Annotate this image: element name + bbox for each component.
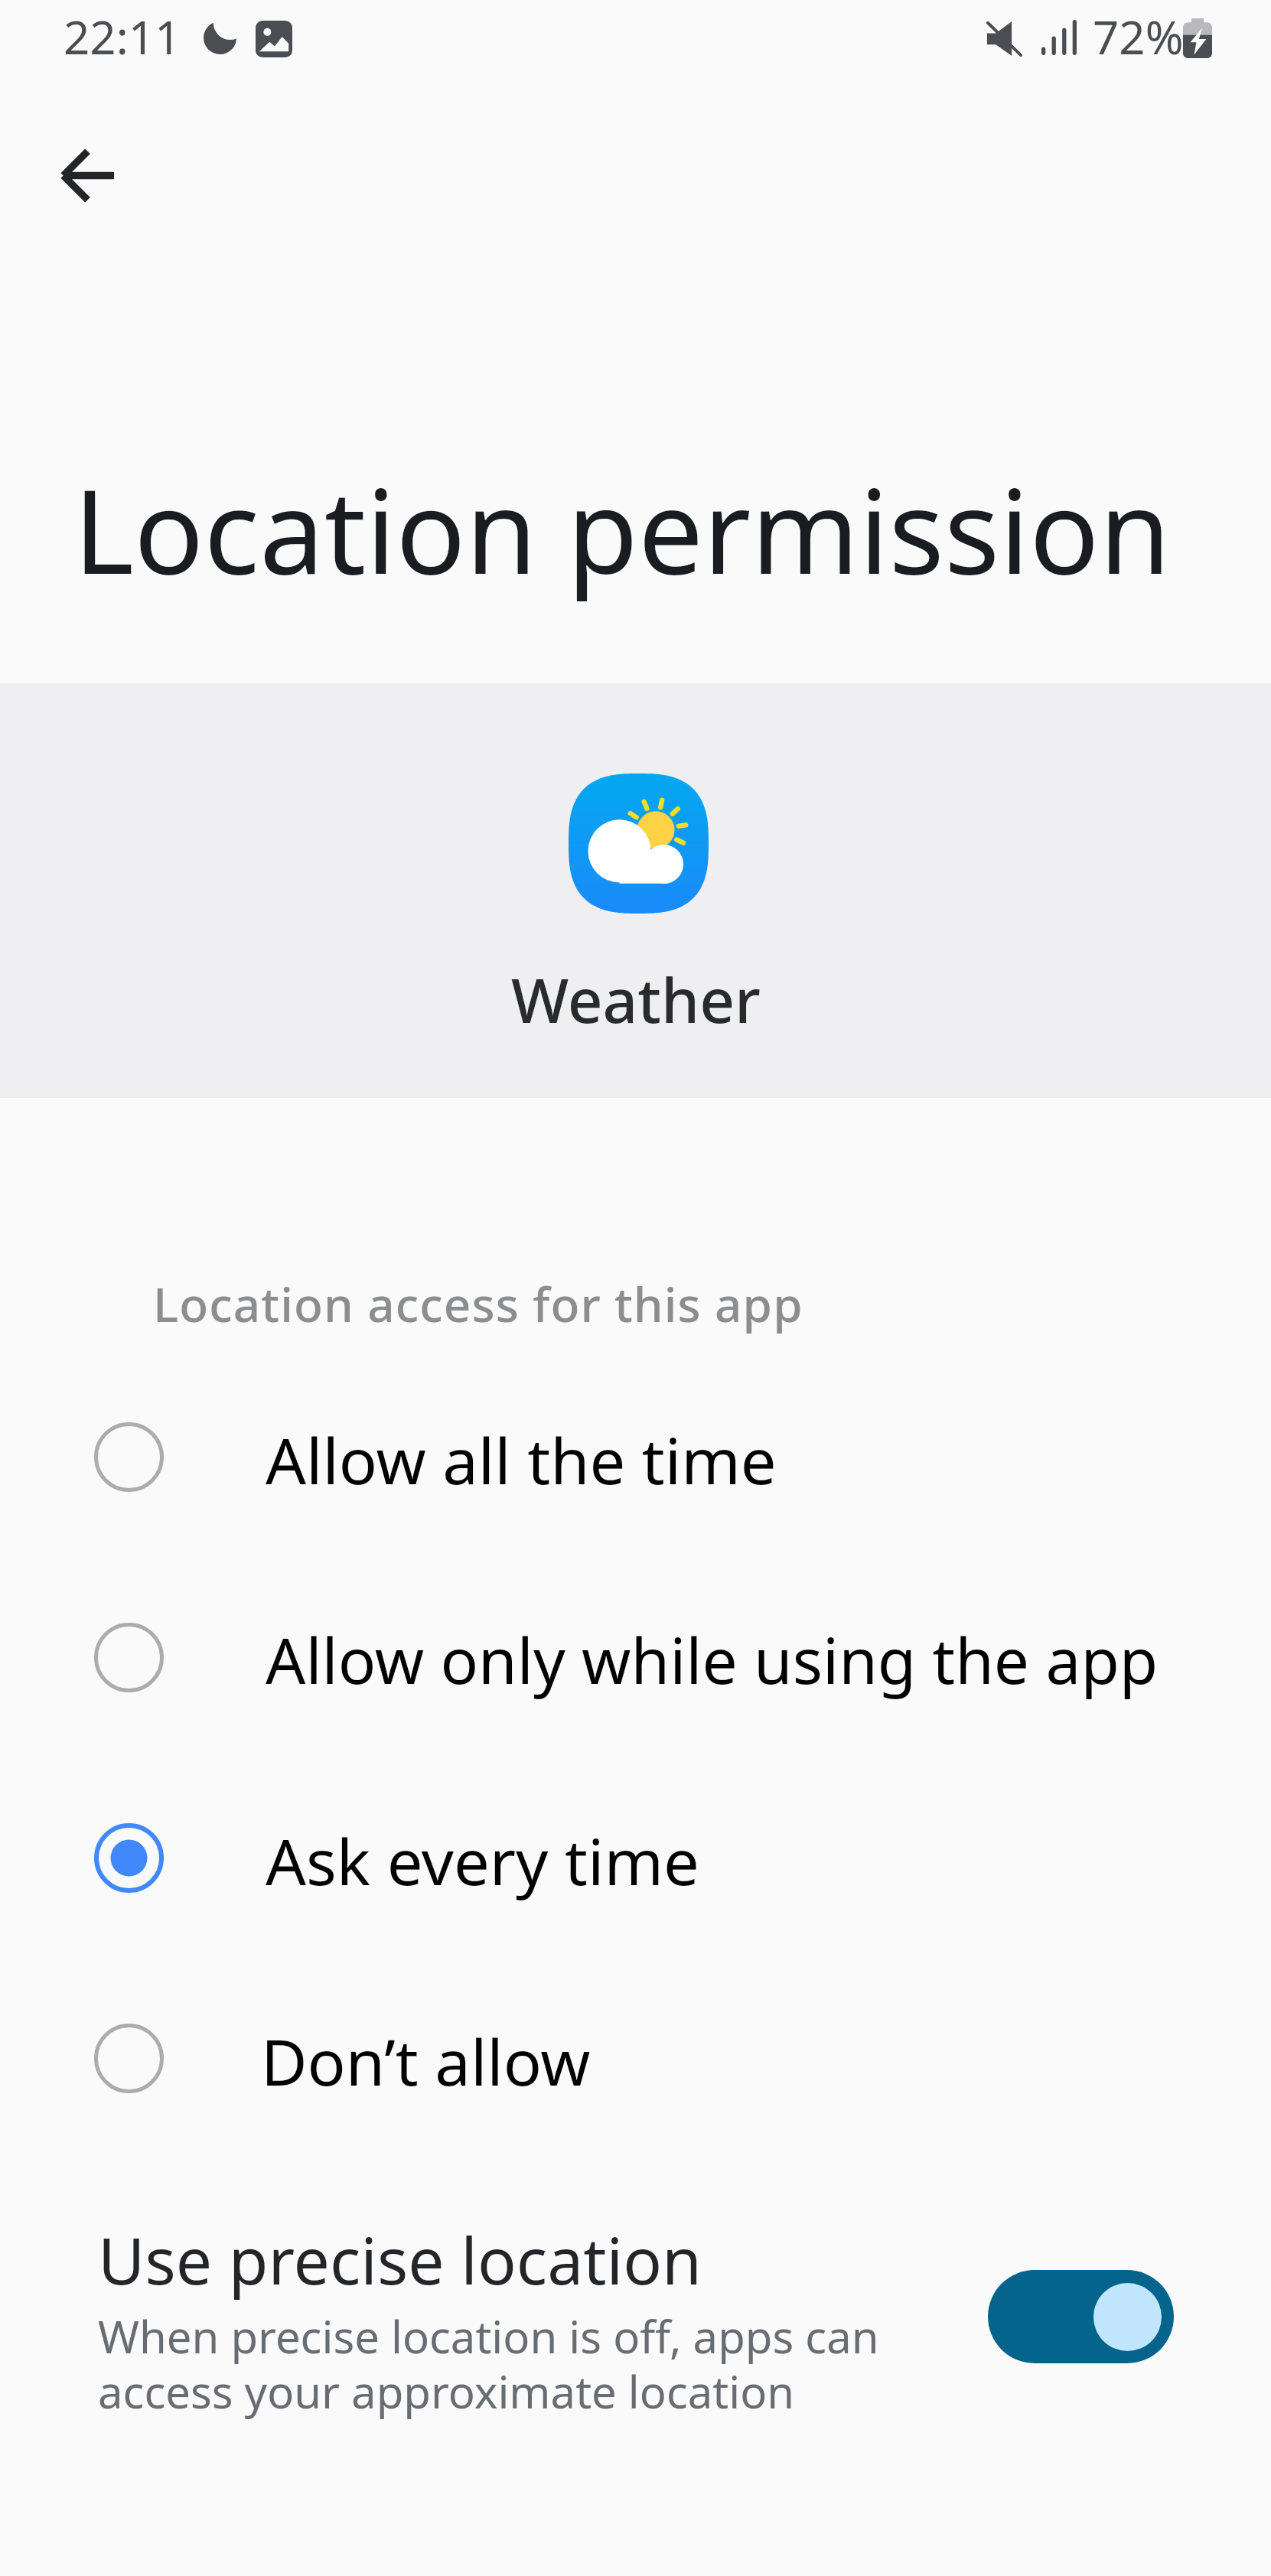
staticText: 72% (1093, 5, 1184, 68)
button[interactable]: Allow all the time (0, 1356, 1271, 1557)
button[interactable]: Use precise location (988, 2270, 1174, 2363)
button[interactable]: Back (11, 99, 164, 252)
staticText: Don’t allow (261, 2017, 591, 2104)
button[interactable]: Allow only while using the app (0, 1557, 1271, 1757)
staticText: 22:11 (64, 5, 181, 68)
staticText: Location permission (73, 451, 1171, 608)
staticText: Use precise location (98, 2216, 702, 2303)
staticText: Ask every time (266, 1817, 699, 1904)
button[interactable]: Ask every time (0, 1757, 1271, 1958)
staticText: Allow all the time (266, 1416, 777, 1503)
staticText: When precise location is off, apps can a… (98, 2306, 879, 2421)
button[interactable]: Use precise location (0, 2188, 1271, 2486)
staticText: Allow only while using the app (266, 1617, 1159, 1702)
staticText: Weather (511, 957, 761, 1040)
staticText: Location access for this app (153, 1272, 803, 1336)
button[interactable]: Don’t allow (0, 1958, 1271, 2158)
